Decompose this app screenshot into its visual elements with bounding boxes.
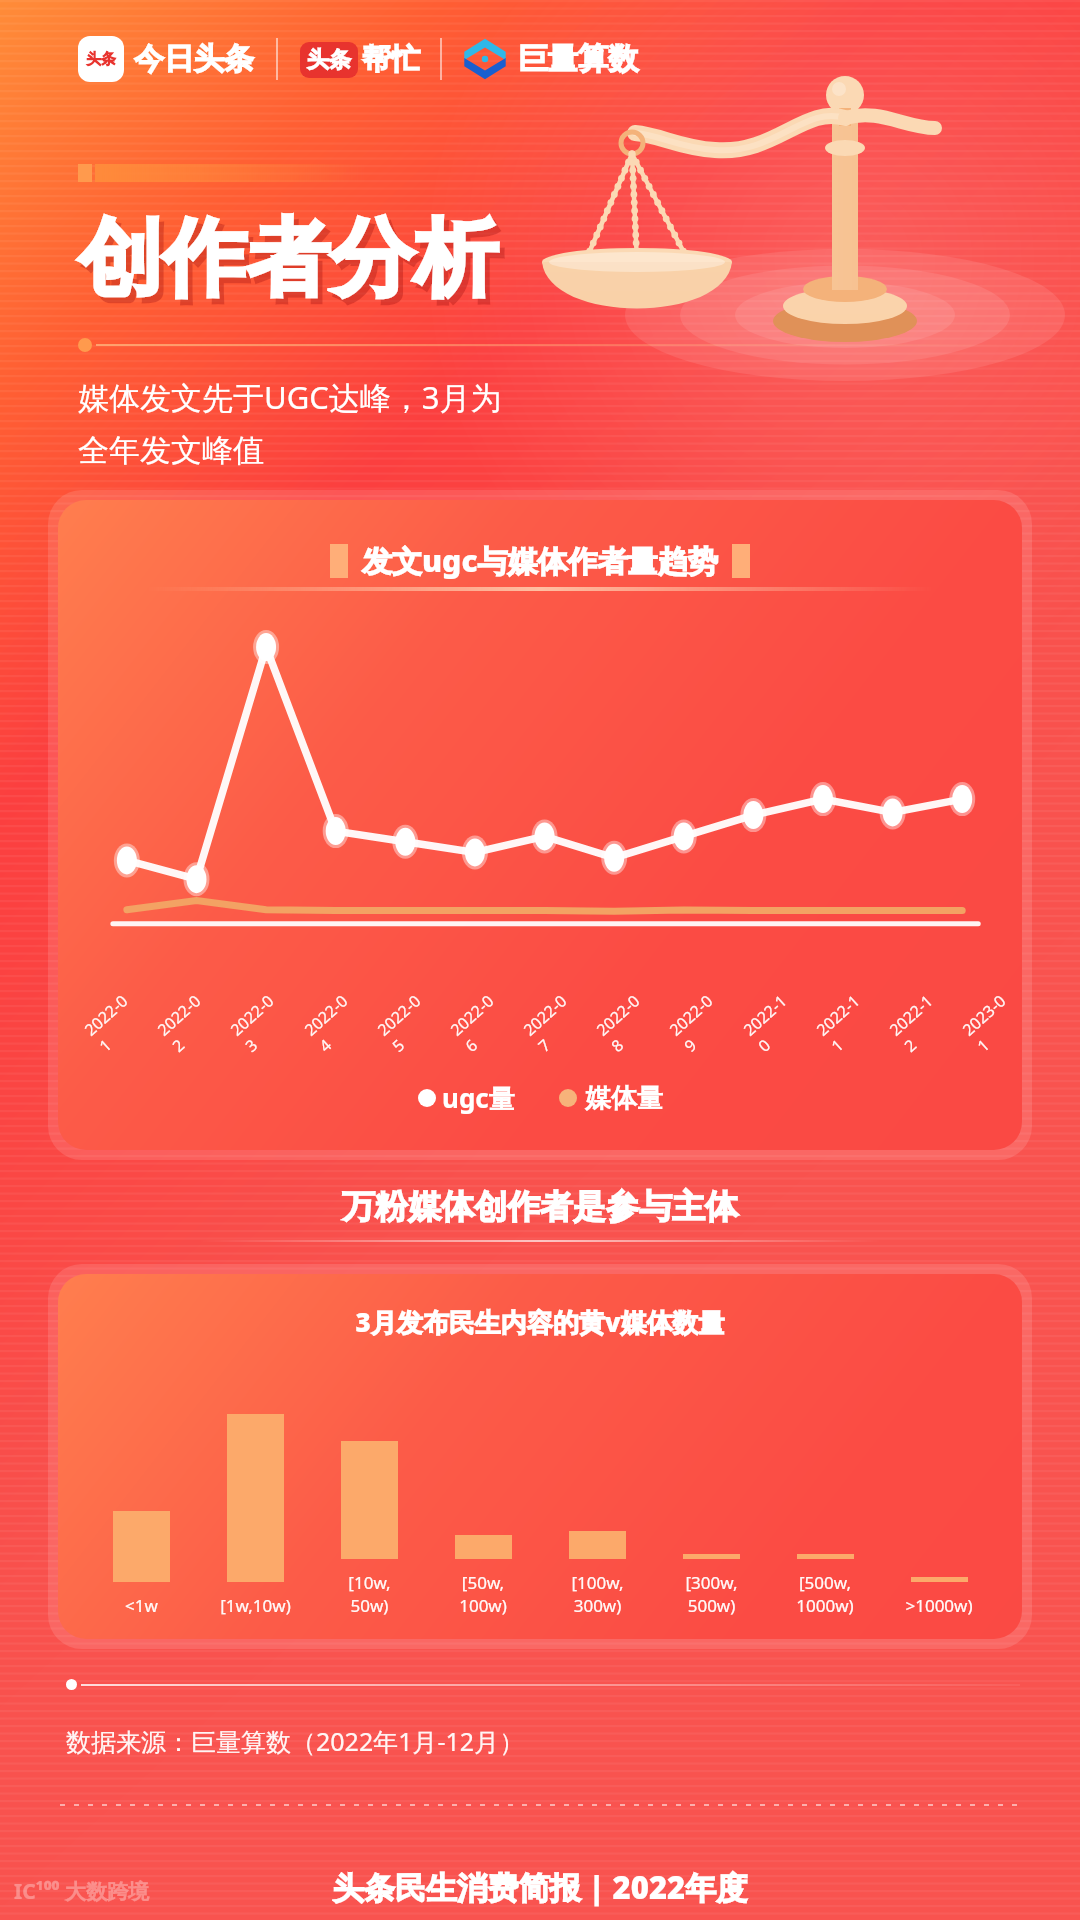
staticText: 头条 <box>307 46 351 74</box>
staticText: 2022-07 <box>519 988 588 1057</box>
staticText: <1w <box>125 1594 158 1617</box>
staticText: 2022-11 <box>812 988 881 1057</box>
staticText: 数据来源：巨量算数（2022年1月-12月） <box>66 1724 525 1758</box>
staticText: 2022-06 <box>446 988 515 1057</box>
staticText: 2022-03 <box>226 988 295 1057</box>
staticText: [10w, 50w) <box>348 1571 391 1617</box>
staticText: 媒体量 <box>585 1082 663 1115</box>
staticText: 2022-01 <box>80 988 149 1057</box>
staticText: 创作者分析 <box>83 212 503 318</box>
staticText: 巨量算数 <box>518 40 638 78</box>
staticText: 帮忙 <box>362 41 420 78</box>
staticText: [1w,10w) <box>220 1594 291 1617</box>
staticText: 2022-10 <box>739 988 808 1057</box>
staticText: 媒体发文先于UGC达峰，3月为 全年发文峰值 <box>78 376 502 470</box>
staticText: 头条民生消费简报 | 2022年度 <box>0 1866 1080 1908</box>
button[interactable]: 头条帮忙 <box>300 41 420 78</box>
staticText: ugc量 <box>442 1080 515 1116</box>
staticText: [500w, 1000w) <box>796 1571 854 1617</box>
staticText: 3月发布民生内容的黄v媒体数量 <box>58 1304 1022 1340</box>
staticText: 万粉媒体创作者是参与主体 <box>342 1186 738 1228</box>
staticText: >1000w) <box>905 1594 973 1617</box>
staticText: 2022-09 <box>665 988 734 1057</box>
button[interactable]: 今日头条 <box>78 36 254 82</box>
staticText: 2022-12 <box>885 988 954 1057</box>
staticText: 头条 <box>86 50 116 69</box>
staticText: IC¹⁰⁰ 大数跨境 <box>14 1877 150 1906</box>
staticText: 2022-05 <box>373 988 442 1057</box>
staticText: 创作者分析 <box>78 206 498 312</box>
staticText: 2023-01 <box>958 988 1022 1057</box>
staticText: [300w, 500w) <box>685 1571 738 1617</box>
staticText: 今日头条 <box>134 40 254 78</box>
button[interactable]: 巨量算数 <box>462 36 638 82</box>
staticText: 2022-04 <box>300 988 369 1057</box>
staticText: [100w, 300w) <box>571 1571 624 1617</box>
staticText: 2022-08 <box>592 988 661 1057</box>
staticText: 2022-02 <box>153 988 222 1057</box>
staticText: [50w, 100w) <box>459 1571 507 1617</box>
staticText: 发文ugc与媒体作者量趋势 <box>362 540 718 581</box>
